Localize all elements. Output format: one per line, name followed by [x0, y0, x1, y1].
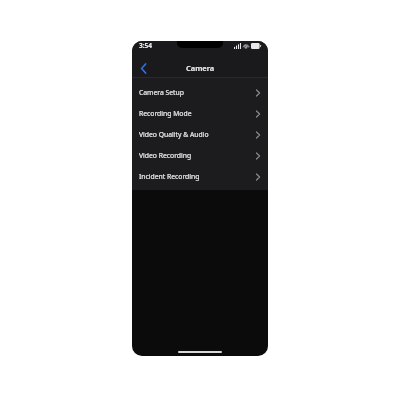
button[interactable]: Video Quality & Audio	[132, 124, 268, 145]
staticText: Camera Setup	[139, 88, 184, 97]
button[interactable]: Video Recording	[132, 145, 268, 166]
button[interactable]: Recording Mode	[132, 103, 268, 124]
staticText: Incident Recording	[139, 172, 200, 181]
staticText: Video Recording	[139, 151, 192, 160]
staticText: Camera	[186, 63, 215, 73]
button[interactable]: Back	[135, 60, 151, 76]
button[interactable]: Camera Setup	[132, 82, 268, 103]
button[interactable]: Incident Recording	[132, 166, 268, 187]
staticText: Recording Mode	[139, 109, 192, 118]
staticText: 3:54	[139, 41, 152, 50]
staticText: Video Quality & Audio	[139, 130, 209, 139]
